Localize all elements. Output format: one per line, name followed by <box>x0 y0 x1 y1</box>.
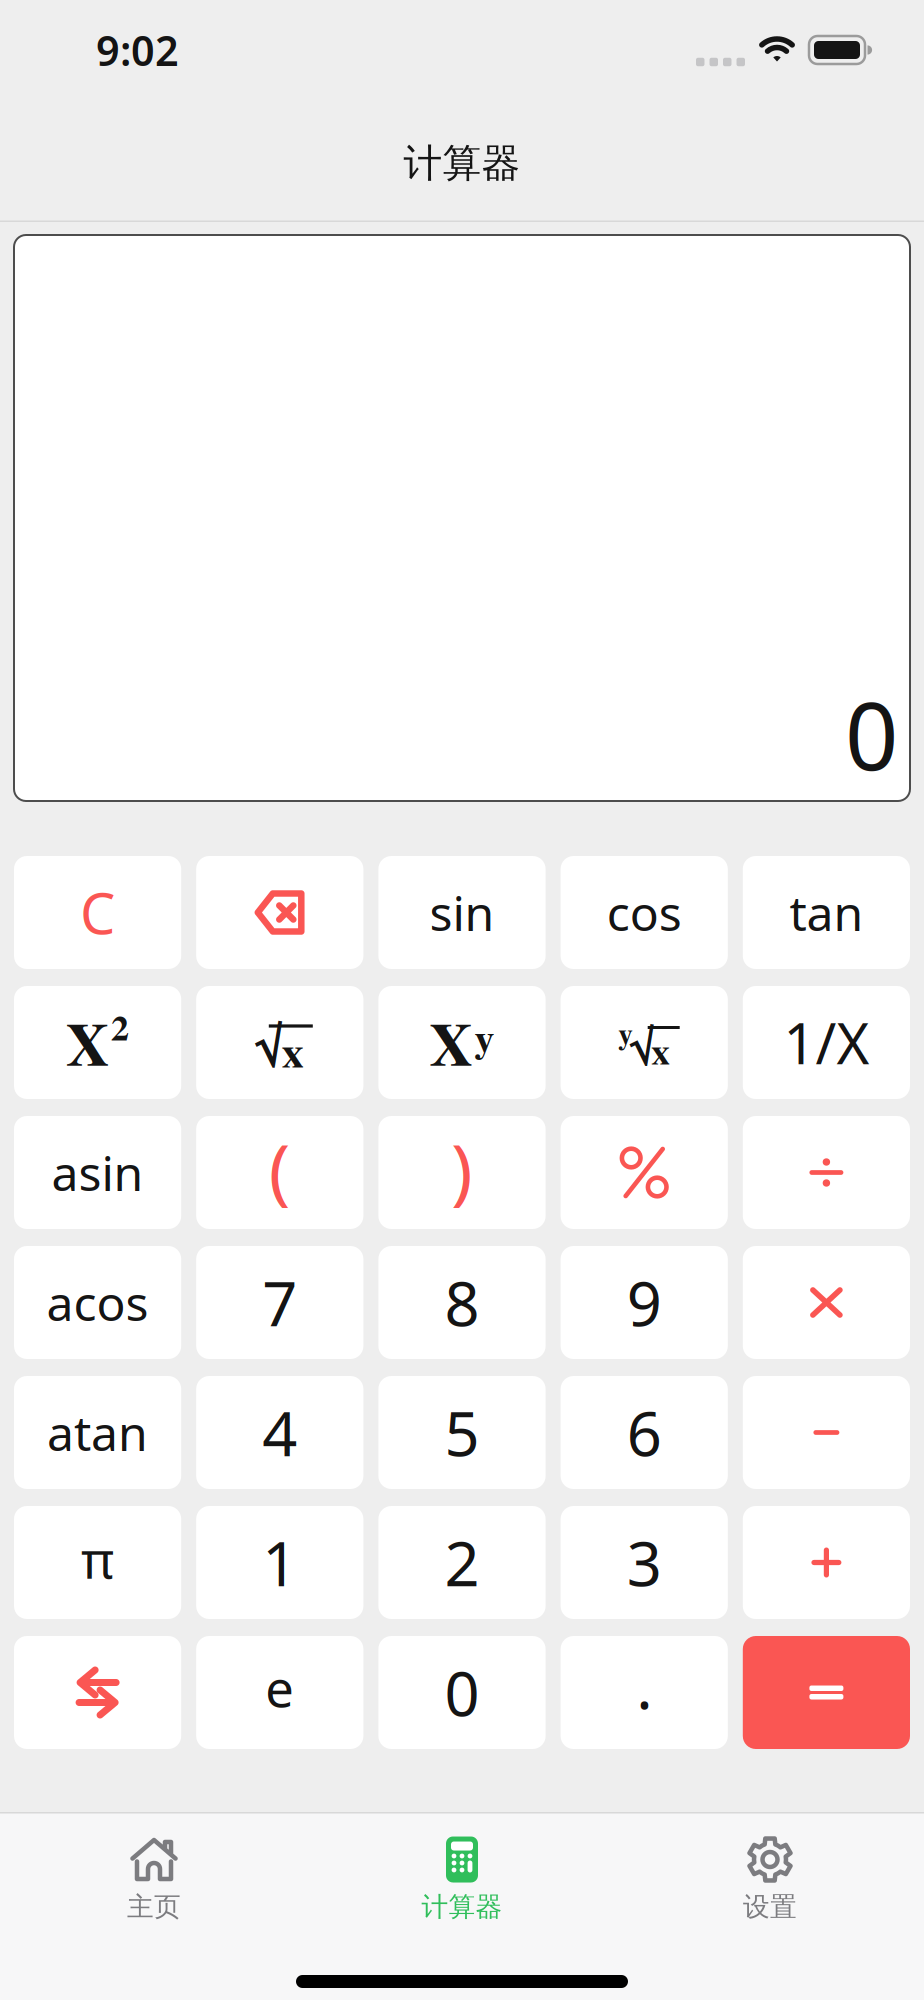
button[interactable]: X <box>14 986 181 1099</box>
staticText: 0 <box>444 1652 479 1733</box>
button[interactable]: 0 <box>378 1636 546 1749</box>
staticText: tan <box>789 881 863 944</box>
button[interactable]: 主页 <box>0 1836 308 1923</box>
button[interactable]: 9 <box>561 1246 728 1359</box>
staticText: 7 <box>262 1262 297 1343</box>
button[interactable]: 计算器 <box>308 1836 616 1923</box>
staticText: x <box>282 1018 304 1083</box>
staticText: 计算器 <box>403 139 520 187</box>
staticText: 1 <box>262 1522 297 1603</box>
button[interactable]: sin <box>378 856 546 969</box>
staticText: 设置 <box>743 1890 797 1923</box>
button[interactable]: ( <box>196 1116 363 1229</box>
button[interactable]: tan <box>743 856 910 969</box>
button[interactable]: × <box>743 1246 910 1359</box>
staticText: 计算器 <box>421 1890 502 1923</box>
button[interactable]: + <box>743 1506 910 1619</box>
staticText: sin <box>429 881 494 944</box>
button[interactable]: 2 <box>378 1506 546 1619</box>
button[interactable]: asin <box>14 1116 181 1229</box>
button[interactable]: 4 <box>196 1376 363 1489</box>
button[interactable]: y <box>561 986 728 1099</box>
staticText: cos <box>607 881 682 944</box>
staticText: 8 <box>444 1262 479 1343</box>
staticText: 2 <box>444 1522 479 1603</box>
button[interactable]: % <box>561 1116 728 1229</box>
button[interactable]: C <box>14 856 181 969</box>
staticText: √ <box>630 1015 654 1079</box>
button[interactable]: . <box>561 1636 728 1749</box>
button[interactable]: e <box>196 1636 363 1749</box>
button[interactable]: 3 <box>561 1506 728 1619</box>
staticText: X <box>429 999 472 1086</box>
button[interactable]: = <box>743 1636 910 1749</box>
button[interactable]: 7 <box>196 1246 363 1359</box>
staticText: 6 <box>627 1392 662 1473</box>
staticText: asin <box>52 1141 144 1204</box>
button[interactable]: 1 <box>196 1506 363 1619</box>
staticText: e <box>265 1654 294 1721</box>
staticText: 5 <box>444 1392 479 1473</box>
staticText: 2 <box>111 1000 129 1053</box>
staticText: 9:02 <box>96 23 179 77</box>
button[interactable]: − <box>743 1376 910 1489</box>
button[interactable]: 6 <box>561 1376 728 1489</box>
button[interactable]: √ <box>196 986 363 1099</box>
button[interactable]: cos <box>561 856 728 969</box>
button[interactable]: 退格 <box>196 856 363 969</box>
staticText: atan <box>47 1401 148 1464</box>
staticText: y <box>618 1012 633 1054</box>
staticText: 4 <box>262 1392 297 1473</box>
staticText: acos <box>47 1271 149 1334</box>
staticText: ) <box>451 1121 473 1217</box>
button[interactable]: 交换 <box>14 1636 181 1749</box>
staticText: X <box>66 999 109 1086</box>
staticText: √ <box>256 1010 283 1082</box>
staticText: 9 <box>627 1262 662 1343</box>
staticText: 主页 <box>127 1890 181 1923</box>
button[interactable]: X <box>378 986 546 1099</box>
staticText: 3 <box>627 1522 662 1603</box>
button[interactable]: acos <box>14 1246 181 1359</box>
staticText: x <box>651 1023 670 1077</box>
button[interactable]: 设置 <box>616 1836 924 1923</box>
staticText: π <box>81 1525 114 1592</box>
button[interactable]: 8 <box>378 1246 546 1359</box>
staticText: 1/X <box>783 1005 869 1080</box>
button[interactable]: π <box>14 1506 181 1619</box>
button[interactable]: 1/X <box>743 986 910 1099</box>
button[interactable]: atan <box>14 1376 181 1489</box>
staticText: . <box>636 1645 652 1726</box>
button[interactable]: ÷ <box>743 1116 910 1229</box>
staticText: ( <box>269 1121 291 1217</box>
staticText: C <box>80 875 115 950</box>
staticText: 0 <box>845 672 898 796</box>
button[interactable]: ) <box>378 1116 546 1229</box>
staticText: y <box>474 1007 494 1066</box>
button[interactable]: 5 <box>378 1376 546 1489</box>
